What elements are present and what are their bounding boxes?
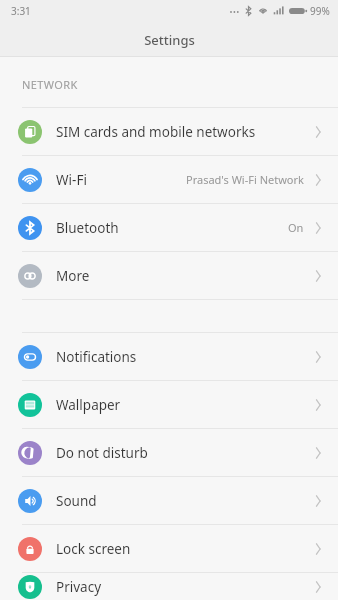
staticText: More	[56, 267, 90, 285]
button[interactable]: Lock screen	[0, 525, 338, 572]
staticText: Wi-Fi	[56, 171, 87, 189]
button[interactable]: Privacy	[0, 573, 338, 600]
staticText: Sound	[56, 492, 97, 510]
button[interactable]: Notifications	[0, 333, 338, 380]
staticText: NETWORK	[22, 77, 78, 92]
button[interactable]: More	[0, 252, 338, 299]
button[interactable]: Do not disturb	[0, 429, 338, 476]
button[interactable]: Bluetooth	[0, 204, 338, 251]
staticText: Do not disturb	[56, 444, 148, 462]
staticText: SIM cards and mobile networks	[56, 123, 256, 141]
staticText: Prasad's Wi-Fi Network	[186, 172, 304, 187]
staticText: Privacy	[56, 578, 102, 596]
button[interactable]: Sound	[0, 477, 338, 524]
staticText: 3:31	[11, 4, 31, 18]
staticText: Wallpaper	[56, 396, 121, 414]
staticText: Notifications	[56, 348, 137, 366]
button[interactable]: SIM cards and mobile networks	[0, 108, 338, 155]
button[interactable]: Wi-Fi	[0, 156, 338, 203]
staticText: Bluetooth	[56, 219, 119, 237]
staticText: On	[288, 220, 304, 235]
button[interactable]: Wallpaper	[0, 381, 338, 428]
staticText: Lock screen	[56, 540, 131, 558]
staticText: 99%	[310, 4, 330, 18]
staticText: Settings	[144, 31, 195, 49]
